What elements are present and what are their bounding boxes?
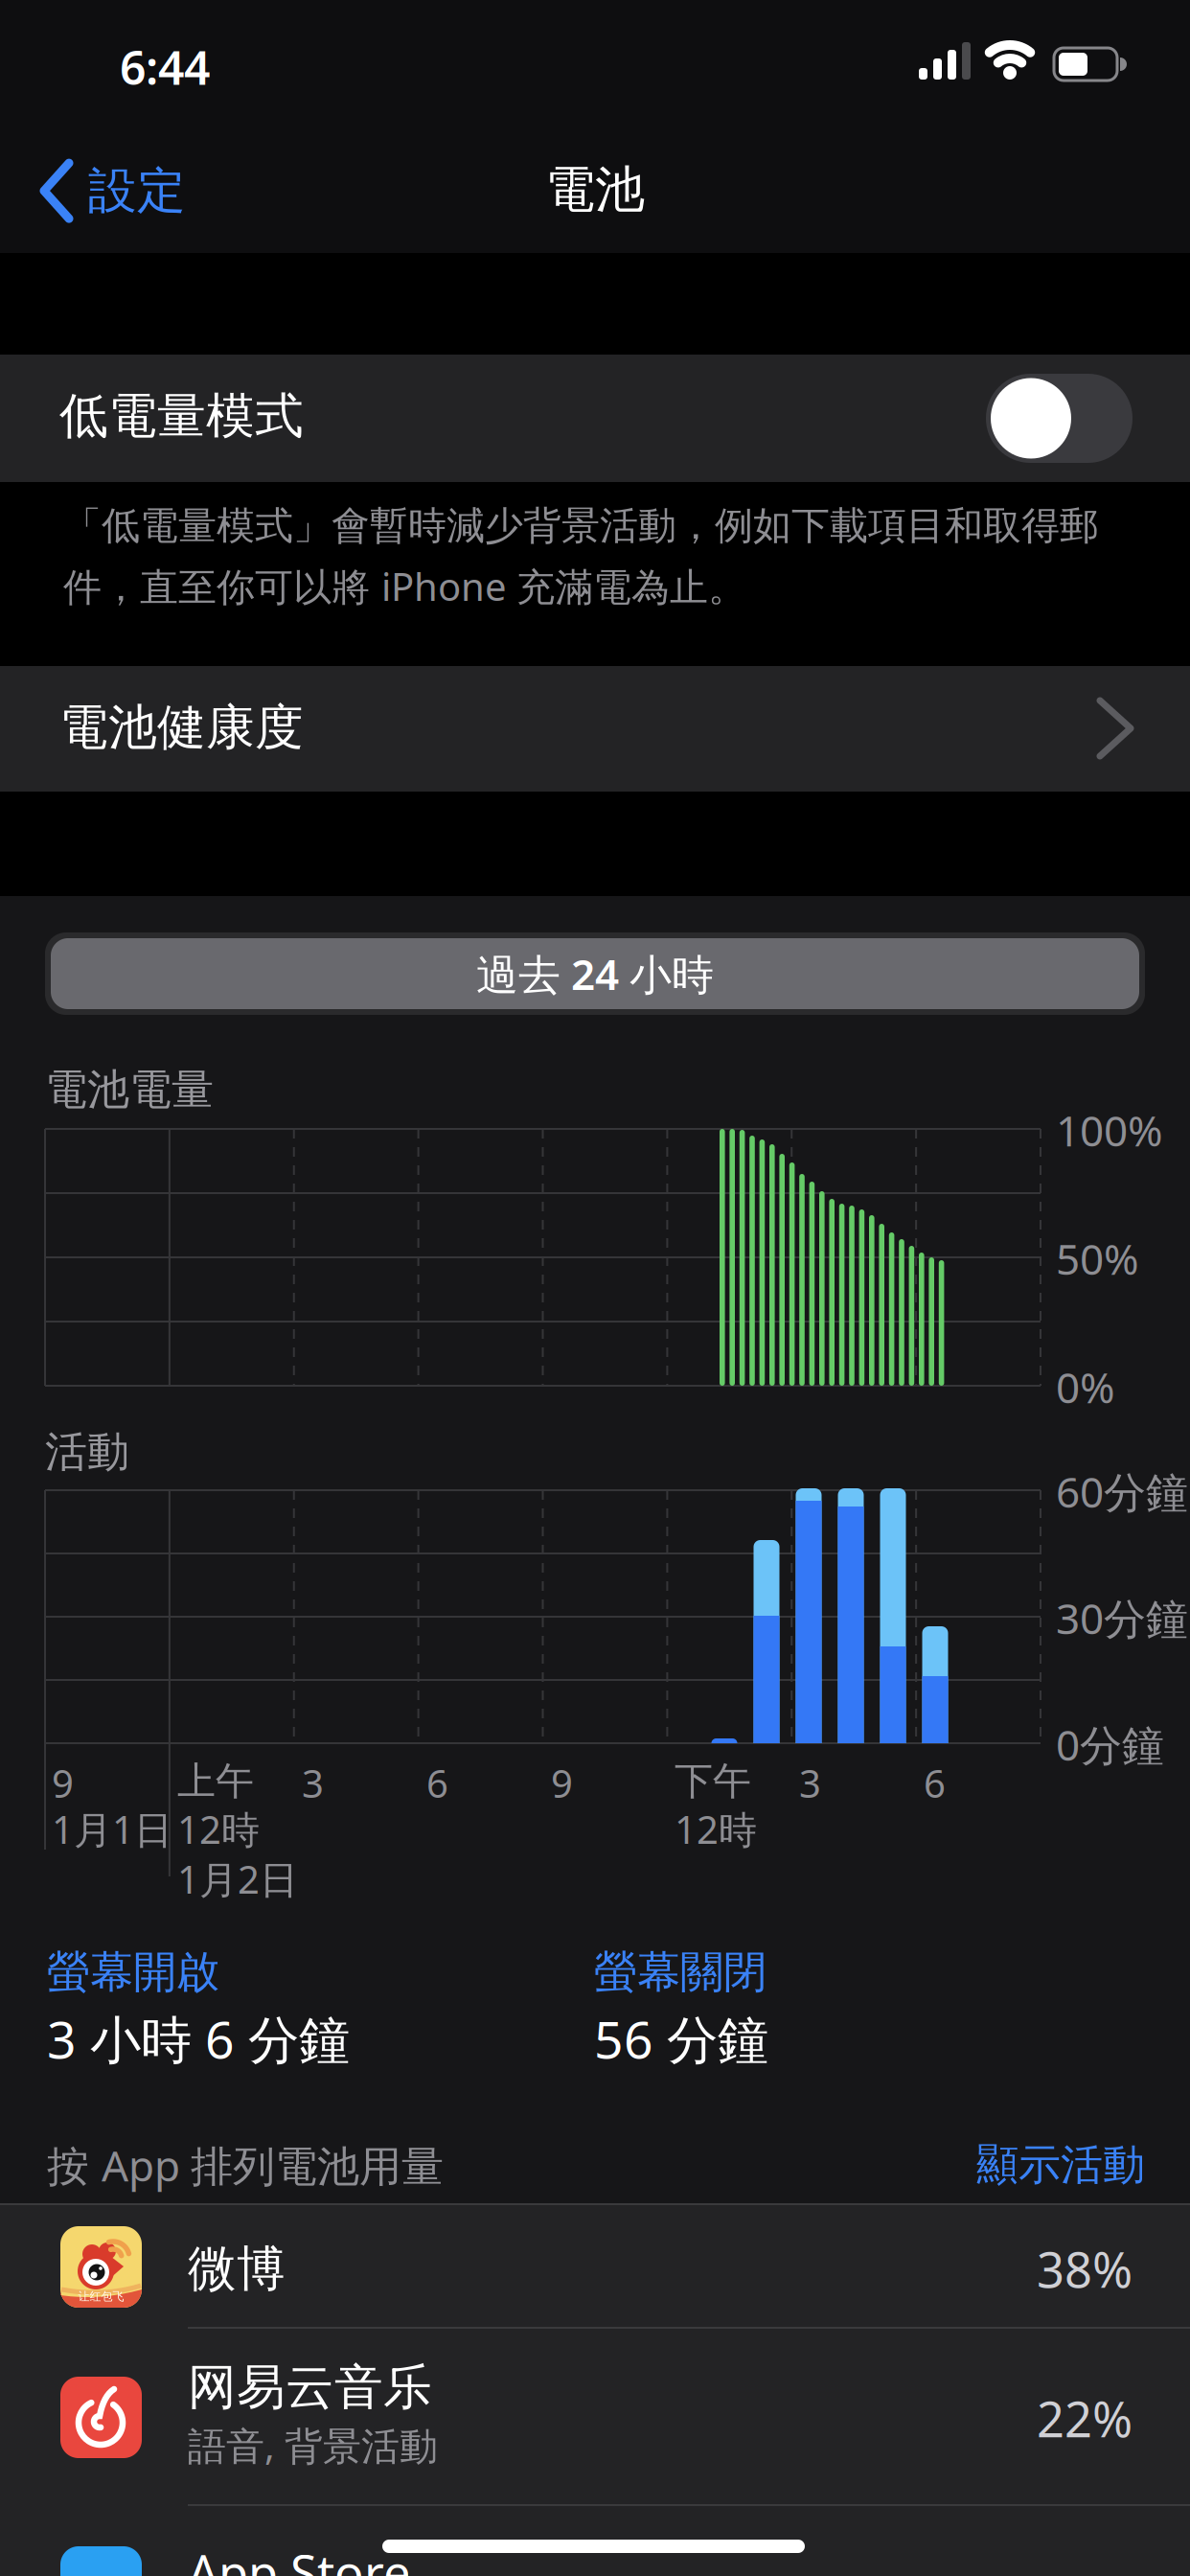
- staticText: 6: [426, 1758, 448, 1808]
- staticText: 让红包飞: [78, 2289, 124, 2304]
- staticText: 6: [924, 1758, 946, 1808]
- button[interactable]: App Store: [0, 2506, 1190, 2576]
- staticText: 低電量模式: [59, 386, 304, 446]
- staticText: 6:44: [120, 36, 210, 97]
- staticText: 100%: [1056, 1102, 1163, 1158]
- staticText: 1月2日: [177, 1853, 298, 1904]
- staticText: 「低電量模式」會暫時減少背景活動，例如下載項目和取得郵: [63, 502, 1098, 549]
- staticText: 微博: [188, 2239, 286, 2299]
- staticText: 顯示活動: [976, 2139, 1145, 2191]
- staticText: 電池: [545, 159, 645, 220]
- staticText: 語音, 背景活動: [188, 2420, 438, 2471]
- staticText: 下午: [675, 1758, 751, 1805]
- button[interactable]: 网易云音乐: [0, 2329, 1190, 2506]
- staticText: 12時: [177, 1804, 260, 1854]
- staticText: 過去 24 小時: [476, 946, 714, 1002]
- staticText: 活動: [45, 1426, 129, 1478]
- staticText: 9: [52, 1758, 74, 1808]
- staticText: 0分鐘: [1056, 1716, 1164, 1772]
- staticText: 60分鐘: [1056, 1463, 1188, 1519]
- staticText: 按 App 排列電池用量: [47, 2137, 444, 2193]
- staticText: 50%: [1056, 1230, 1139, 1286]
- staticText: 0%: [1056, 1359, 1115, 1415]
- staticText: 件，直至你可以將 iPhone 充滿電為止。: [63, 561, 746, 612]
- staticText: 22%: [1037, 2386, 1133, 2451]
- button[interactable]: 設定: [40, 161, 186, 221]
- button[interactable]: 電池健康度: [0, 666, 1190, 2576]
- staticText: 9: [551, 1758, 573, 1808]
- staticText: 螢幕開啟: [47, 1945, 219, 1999]
- button[interactable]: 低電量模式: [986, 374, 1133, 463]
- staticText: 3: [302, 1758, 324, 1808]
- staticText: 1月1日: [52, 1804, 172, 1854]
- staticText: 電池健康度: [59, 698, 304, 757]
- staticText: 56 分鐘: [594, 2005, 768, 2073]
- staticText: 電池電量: [45, 1064, 214, 1115]
- staticText: App Store: [188, 2540, 411, 2576]
- staticText: 3 小時 6 分鐘: [47, 2005, 350, 2073]
- staticText: 30分鐘: [1056, 1590, 1188, 1646]
- button[interactable]: 顯示活動: [976, 2139, 1145, 2191]
- staticText: 38%: [1037, 2237, 1133, 2301]
- button[interactable]: 让红包飞: [0, 2217, 1190, 2339]
- staticText: 3: [799, 1758, 821, 1808]
- staticText: 上午: [177, 1758, 254, 1805]
- staticText: 网易云音乐: [188, 2357, 432, 2417]
- button[interactable]: 過去 24 小時: [45, 932, 1145, 1015]
- staticText: 設定: [88, 161, 186, 221]
- staticText: 螢幕關閉: [594, 1945, 767, 1999]
- staticText: 12時: [675, 1804, 757, 1854]
